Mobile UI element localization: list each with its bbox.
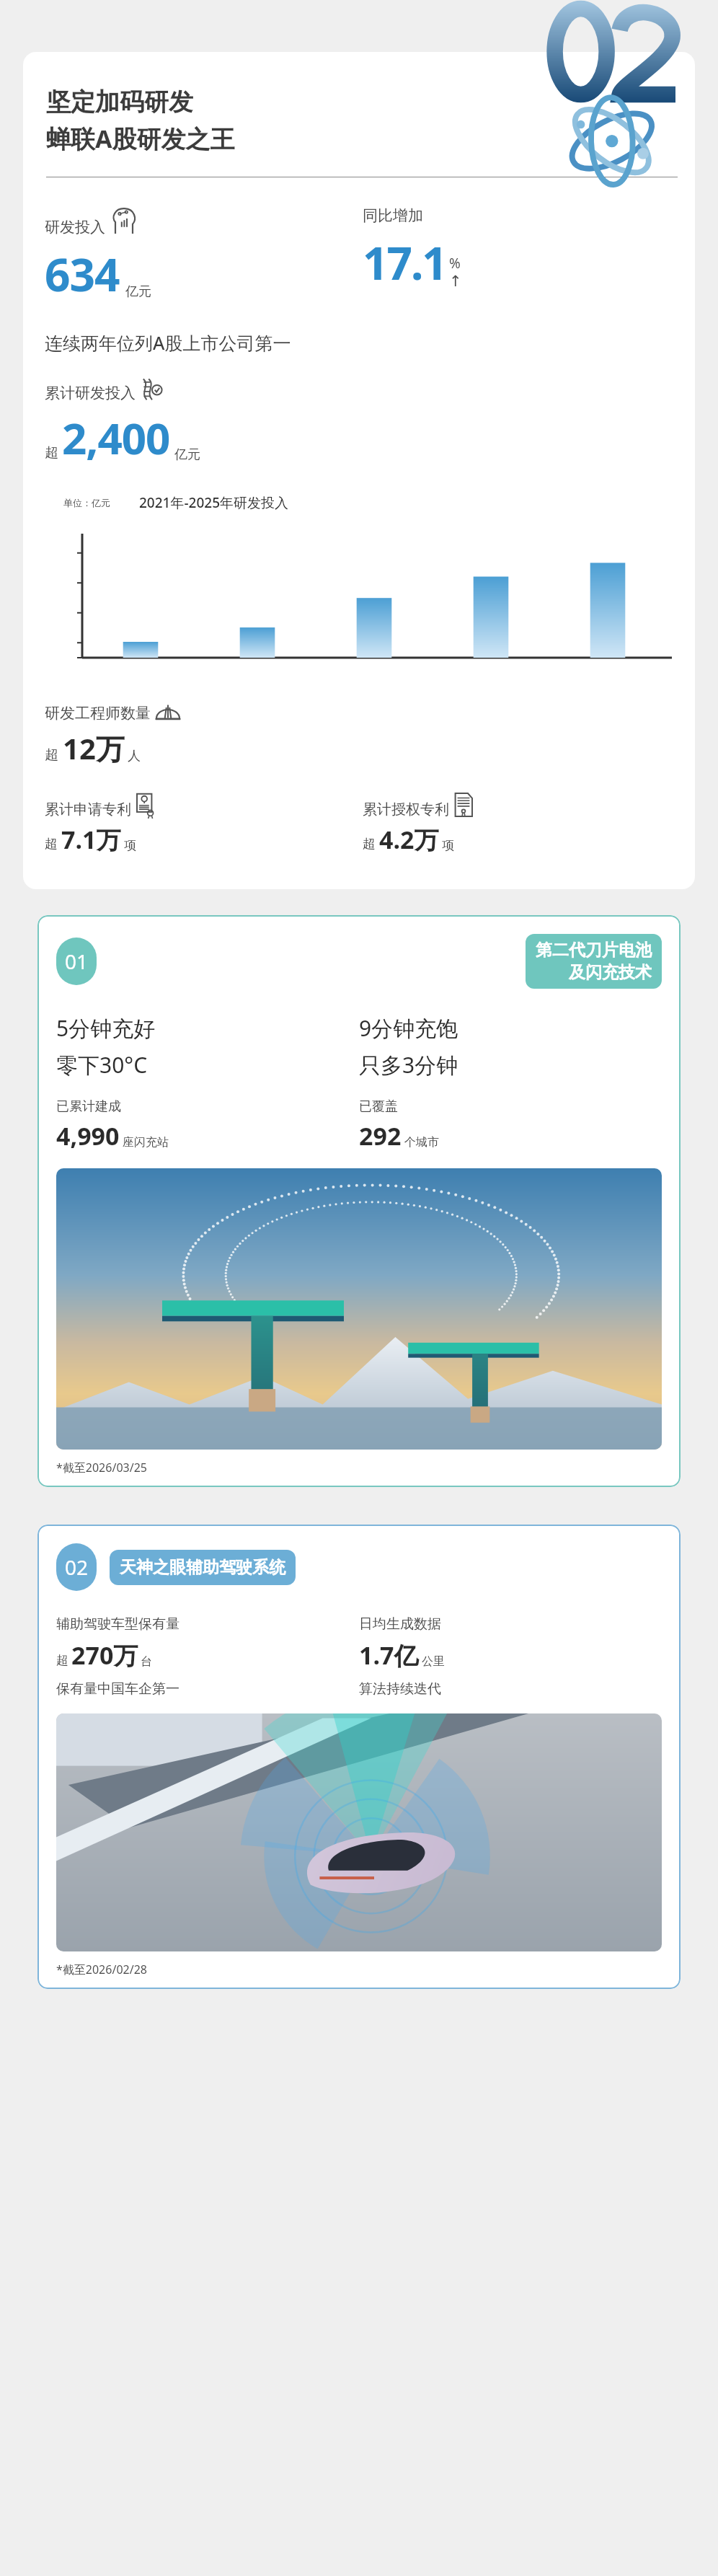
button[interactable]: 02 (37, 1525, 681, 1989)
staticText: 累计申请专利 (45, 800, 131, 819)
staticText: 5分钟充好 (56, 1013, 156, 1043)
staticText: 公里 (422, 1654, 445, 1669)
button[interactable]: 01 (37, 915, 681, 1487)
staticText: 7.1万 (61, 823, 121, 856)
staticText: 保有量中国车企第一 (56, 1680, 179, 1698)
staticText: 1.7亿 (359, 1638, 419, 1672)
staticText: 天神之眼辅助驾驶系统 (120, 1557, 285, 1578)
staticText: 算法持续迭代 (359, 1680, 441, 1698)
staticText: 634 (45, 244, 120, 304)
staticText: 292 (359, 1119, 402, 1152)
staticText: 及闪充技术 (569, 962, 652, 983)
staticText: 坚定加码研发 (46, 87, 193, 118)
staticText: 蝉联A股研发之王 (46, 122, 235, 155)
staticText: 累计研发投入 (45, 384, 136, 402)
staticText: 9分钟充饱 (359, 1013, 458, 1043)
staticText: 第二代刀片电池 (536, 940, 652, 961)
staticText: 超 (45, 836, 58, 852)
staticText: 超 (363, 836, 376, 852)
staticText: 12万 (63, 728, 125, 768)
staticText: 亿元 (125, 283, 151, 300)
staticText: 连续两年位列A股上市公司第一 (45, 330, 291, 355)
staticText: 单位：亿元 (63, 497, 110, 508)
staticText: 同比增加 (363, 206, 423, 225)
staticText: 座闪充站 (123, 1135, 169, 1150)
staticText: 研发工程师数量 (45, 704, 151, 723)
staticText: 辅助驾驶车型保有量 (56, 1615, 179, 1633)
staticText: 02 (65, 1553, 89, 1581)
staticText: 累计授权专利 (363, 800, 449, 819)
other: Flash charging station photo (56, 1168, 662, 1450)
staticText: 零下30°C (56, 1050, 148, 1080)
staticText: *截至2026/03/25 (56, 1460, 147, 1476)
staticText: 研发投入 (45, 218, 105, 237)
staticText: 只多3分钟 (359, 1050, 458, 1080)
staticText: *截至2026/02/28 (56, 1962, 147, 1977)
staticText: 4,990 (56, 1119, 120, 1152)
staticText: 4.2万 (379, 823, 439, 856)
staticText: 项 (442, 838, 454, 853)
staticText: 亿元 (174, 446, 200, 463)
staticText: 已累计建成 (56, 1098, 121, 1115)
staticText: 17.1 (363, 232, 446, 293)
staticText: 270万 (71, 1638, 138, 1672)
other: Assisted driving sensor visualisation (56, 1713, 662, 1951)
staticText: 已覆盖 (359, 1098, 398, 1115)
staticText: 超 (45, 746, 58, 764)
staticText: 个城市 (404, 1135, 439, 1150)
staticText: 超 (45, 444, 58, 462)
staticText: % (449, 254, 461, 273)
staticText: 日均生成数据 (359, 1615, 441, 1633)
staticText: 超 (56, 1653, 68, 1668)
staticText: 2021年-2025年研发投入 (139, 493, 289, 512)
staticText: 人 (128, 748, 141, 764)
staticText: 01 (65, 948, 89, 975)
staticText: ↑ (449, 273, 462, 290)
staticText: 台 (141, 1654, 152, 1669)
staticText: 项 (124, 838, 136, 853)
staticText: 2,400 (62, 408, 170, 467)
